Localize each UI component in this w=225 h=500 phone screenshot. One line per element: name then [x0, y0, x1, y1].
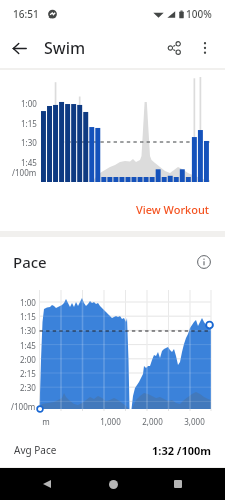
- staticText: 2:00: [20, 354, 36, 365]
- staticText: 1:15: [21, 118, 37, 129]
- staticText: Swim: [44, 37, 86, 59]
- staticText: 1:45: [20, 340, 36, 351]
- button[interactable]: View Workout: [130, 196, 216, 223]
- button[interactable]: Recent apps: [160, 468, 196, 500]
- staticText: Avg Pace: [14, 443, 57, 457]
- staticText: 1:30: [20, 325, 36, 336]
- staticText: 1:00: [21, 98, 37, 109]
- staticText: View Workout: [136, 202, 210, 217]
- staticText: 1:30: [21, 137, 37, 148]
- staticText: /100m: [11, 401, 36, 412]
- staticText: 3,000: [184, 416, 205, 427]
- staticText: 2:30: [20, 382, 36, 393]
- staticText: 16:51: [13, 7, 39, 21]
- staticText: /100m: [12, 167, 37, 178]
- button[interactable]: Back: [4, 33, 34, 63]
- button[interactable]: Back: [29, 468, 65, 500]
- staticText: 1:45: [21, 157, 37, 168]
- staticText: 2:15: [20, 368, 36, 379]
- staticText: m: [42, 416, 50, 427]
- button[interactable]: Home: [95, 468, 131, 500]
- button[interactable]: Info: [191, 249, 217, 275]
- staticText: 1,000: [100, 416, 121, 427]
- staticText: 1:00: [20, 297, 36, 308]
- staticText: 2,000: [142, 416, 163, 427]
- staticText: Pace: [13, 252, 47, 272]
- staticText: 100%: [186, 7, 212, 21]
- button[interactable]: More options: [190, 33, 220, 63]
- staticText: 1:15: [20, 311, 36, 322]
- button[interactable]: Share: [158, 32, 190, 64]
- staticText: 1:32 /100m: [152, 443, 211, 458]
